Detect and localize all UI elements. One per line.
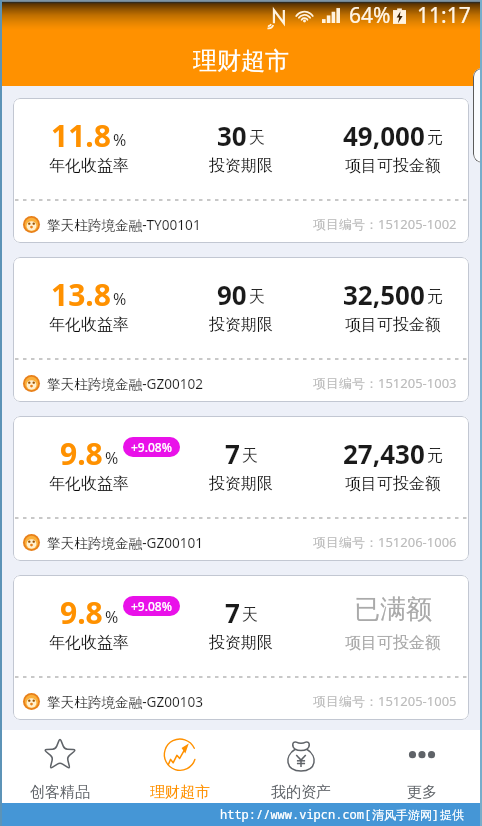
staticText: %	[105, 606, 119, 628]
staticText: 理财超市	[193, 46, 289, 76]
button[interactable]: Open drawer	[473, 68, 482, 163]
button[interactable]: 13.8	[13, 257, 469, 402]
staticText: 已满额	[354, 593, 432, 626]
staticText: 擎天柱跨境金融-GZ00102	[47, 374, 204, 393]
button[interactable]: 11.8	[13, 98, 469, 243]
staticText: 13.8	[51, 274, 111, 315]
staticText: 90	[217, 277, 247, 312]
staticText: 投资期限	[209, 474, 273, 494]
staticText: 天	[242, 605, 258, 625]
staticText: 项目编号：151205-1005	[313, 692, 457, 710]
staticText: 项目可投金额	[345, 474, 441, 494]
button[interactable]: 9.8	[13, 575, 469, 720]
staticText: 天	[242, 446, 258, 466]
staticText: 年化收益率	[49, 156, 129, 176]
button[interactable]: 我的资产	[240, 730, 361, 803]
staticText: 11:17	[417, 1, 471, 30]
staticText: %	[113, 129, 127, 151]
staticText: 擎天柱跨境金融-TY00101	[47, 215, 201, 234]
button[interactable]: 9.8	[13, 416, 469, 561]
staticText: 年化收益率	[49, 474, 129, 494]
staticText: 30	[217, 118, 247, 153]
staticText: 49,000	[343, 118, 425, 153]
staticText: 擎天柱跨境金融-GZ00101	[47, 533, 204, 552]
staticText: 创客精品	[30, 783, 90, 802]
staticText: http://www.vipcn.com[	[220, 806, 372, 822]
staticText: 元	[427, 287, 443, 307]
staticText: 提供	[440, 807, 464, 822]
staticText: +9.08%	[131, 439, 172, 455]
staticText: 项目编号：151205-1003	[313, 374, 457, 392]
staticText: 我的资产	[271, 783, 331, 802]
staticText: 擎天柱跨境金融-GZ00103	[47, 692, 204, 711]
staticText: 项目可投金额	[345, 633, 441, 653]
staticText: %	[105, 447, 119, 469]
staticText: ]	[432, 806, 440, 822]
staticText: +9.08%	[131, 598, 172, 614]
staticText: 天	[249, 128, 265, 148]
staticText: 27,430	[343, 436, 425, 471]
staticText: 清风手游网	[372, 807, 432, 822]
staticText: 7	[225, 436, 240, 471]
button[interactable]: 理财超市	[120, 730, 240, 803]
staticText: 项目可投金额	[345, 315, 441, 335]
staticText: 64%	[349, 1, 391, 30]
staticText: 11.8	[51, 115, 111, 156]
staticText: 元	[427, 446, 443, 466]
staticText: 年化收益率	[49, 315, 129, 335]
staticText: 项目可投金额	[345, 156, 441, 176]
staticText: 项目编号：151206-1006	[313, 533, 457, 551]
button[interactable]: 更多	[361, 730, 482, 803]
staticText: 32,500	[343, 277, 425, 312]
staticText: 投资期限	[209, 315, 273, 335]
staticText: 更多	[407, 783, 437, 802]
staticText: 项目编号：151205-1002	[313, 215, 457, 233]
staticText: 理财超市	[150, 783, 210, 802]
staticText: 投资期限	[209, 633, 273, 653]
button[interactable]: 创客精品	[0, 730, 120, 803]
staticText: 7	[225, 595, 240, 630]
staticText: 年化收益率	[49, 633, 129, 653]
staticText: 9.8	[60, 433, 103, 474]
staticText: 天	[249, 287, 265, 307]
staticText: %	[113, 288, 127, 310]
staticText: 9.8	[60, 592, 103, 633]
staticText: 元	[427, 128, 443, 148]
staticText: 投资期限	[209, 156, 273, 176]
